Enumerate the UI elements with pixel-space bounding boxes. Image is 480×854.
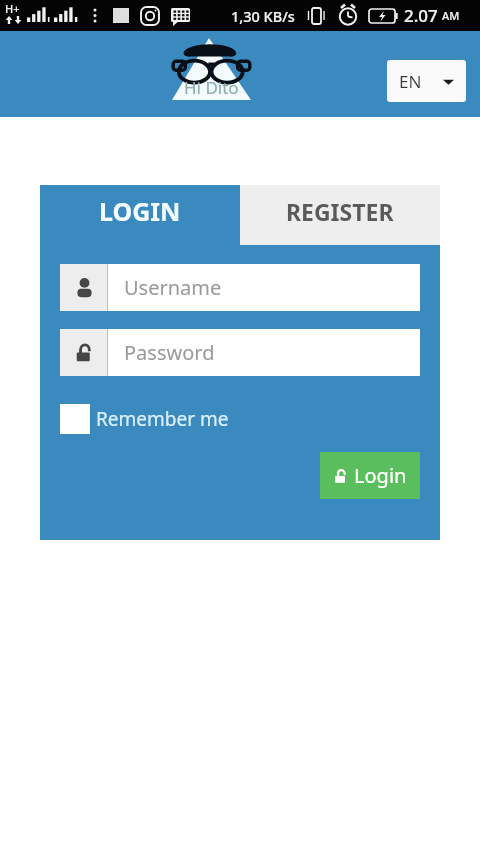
staticText: H+	[5, 1, 20, 16]
button[interactable]: LOGIN	[40, 185, 240, 245]
button[interactable]: Login	[320, 452, 420, 499]
staticText: Username	[124, 274, 222, 301]
staticText: 2.07	[404, 4, 438, 27]
staticText: 1,30 KB/s	[231, 6, 295, 26]
staticText: Password	[124, 339, 215, 366]
button[interactable]: Password	[60, 329, 420, 376]
button[interactable]: REGISTER	[240, 185, 440, 245]
staticText: LOGIN	[99, 194, 181, 228]
staticText: EN	[399, 70, 422, 93]
staticText: Remember me	[96, 406, 229, 432]
staticText: Hi Dito	[184, 76, 239, 99]
button[interactable]: Remember me	[60, 404, 229, 434]
staticText: REGISTER	[286, 196, 394, 227]
button[interactable]: Username	[60, 264, 420, 311]
button[interactable]: Select language	[387, 60, 466, 102]
staticText: Login	[354, 462, 407, 489]
staticText: AM	[442, 8, 460, 23]
